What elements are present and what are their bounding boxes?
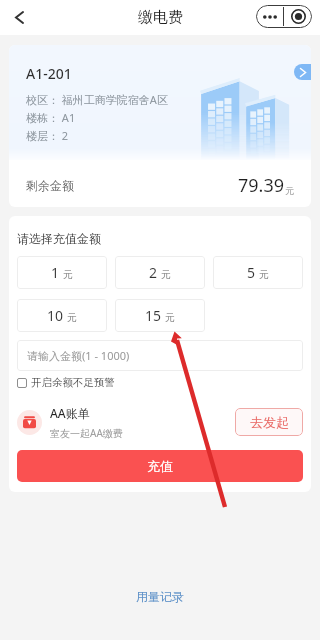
staticText: 楼层： 2 — [26, 128, 69, 143]
staticText: 开启余额不足预警 — [31, 376, 115, 389]
staticText: 请选择充值金额 — [17, 231, 101, 246]
staticText: 元 — [285, 185, 294, 196]
button[interactable]: 10 — [17, 299, 107, 332]
button[interactable]: 充值 — [17, 450, 303, 482]
button[interactable]: 15 — [115, 299, 205, 332]
button[interactable]: Close mini program — [284, 5, 312, 28]
button[interactable]: 用量记录 — [128, 585, 192, 608]
staticText: 元 — [165, 311, 175, 324]
staticText: A1-201 — [26, 64, 72, 83]
button[interactable]: Back — [6, 4, 32, 30]
button[interactable]: 1 — [17, 256, 107, 289]
staticText: 元 — [67, 311, 77, 324]
staticText: 元 — [161, 268, 171, 281]
button[interactable]: Switch room — [294, 64, 311, 80]
staticText: 充值 — [147, 458, 173, 474]
staticText: 校区： 福州工商学院宿舍A区 — [26, 92, 168, 107]
staticText: 楼栋： A1 — [26, 110, 76, 125]
staticText: 请输入金额(1 - 1000) — [27, 348, 130, 363]
staticText: 79.39 — [238, 173, 285, 198]
staticText: 15 — [145, 306, 162, 325]
staticText: 剩余金额 — [26, 178, 74, 193]
staticText: 室友一起AA缴费 — [50, 426, 123, 440]
button[interactable]: 2 — [115, 256, 205, 289]
staticText: 用量记录 — [136, 589, 184, 604]
staticText: 去发起 — [250, 414, 289, 430]
staticText: AA账单 — [50, 405, 90, 421]
staticText: 元 — [63, 268, 73, 281]
staticText: 5 — [247, 263, 256, 282]
button[interactable]: 开启余额不足预警 — [17, 376, 115, 389]
staticText: 2 — [149, 263, 158, 282]
staticText: 元 — [259, 268, 269, 281]
button[interactable]: More options — [256, 5, 283, 28]
button[interactable]: 请输入金额(1 - 1000) — [17, 340, 303, 371]
button[interactable]: 5 — [213, 256, 303, 289]
staticText: 缴电费 — [138, 8, 183, 27]
button[interactable]: 去发起 — [235, 408, 303, 436]
staticText: 10 — [47, 306, 64, 325]
staticText: 1 — [51, 263, 60, 282]
